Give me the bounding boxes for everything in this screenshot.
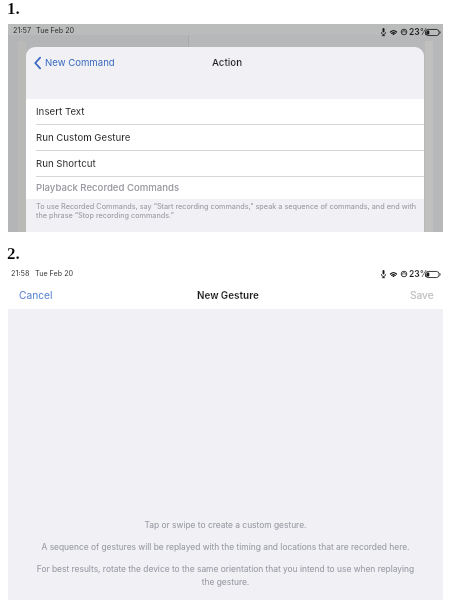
- staticText: Run Custom Gesture: [36, 132, 131, 144]
- staticText: To use Recorded Commands, say “Start rec…: [36, 202, 424, 220]
- staticText: 23%: [409, 27, 429, 37]
- staticText: New Gesture: [197, 290, 259, 302]
- staticText: For best results, rotate the device to t…: [32, 564, 419, 587]
- button[interactable]: Save: [410, 289, 434, 301]
- staticText: Action: [212, 57, 243, 69]
- button[interactable]: Run Shortcut: [26, 151, 424, 176]
- staticText: 23%: [409, 269, 429, 279]
- staticText: Tap or swipe to create a custom gesture.: [8, 520, 443, 530]
- button[interactable]: New Command: [34, 56, 115, 69]
- staticText: 1.: [7, 0, 20, 18]
- staticText: 21:58: [11, 269, 30, 278]
- staticText: A sequence of gestures will be replayed …: [8, 542, 443, 552]
- staticText: Tue Feb 20: [35, 269, 74, 278]
- button[interactable]: Run Custom Gesture: [26, 125, 424, 150]
- staticText: Playback Recorded Commands: [36, 182, 180, 194]
- staticText: Tue Feb 20: [36, 26, 75, 35]
- staticText: New Command: [45, 57, 115, 69]
- staticText: 2.: [7, 244, 20, 263]
- staticText: 21:57: [13, 26, 32, 35]
- staticText: Insert Text: [36, 106, 85, 118]
- staticText: Save: [410, 289, 434, 301]
- button[interactable]: Playback Recorded Commands: [26, 177, 424, 199]
- button[interactable]: Cancel: [19, 289, 53, 301]
- button[interactable]: Insert Text: [26, 99, 424, 124]
- staticText: Cancel: [19, 289, 53, 301]
- staticText: Run Shortcut: [36, 158, 96, 170]
- other: Status: microphone, wifi, rotation lock,…: [372, 24, 445, 35]
- other: Status: microphone, wifi, rotation lock,…: [372, 266, 445, 278]
